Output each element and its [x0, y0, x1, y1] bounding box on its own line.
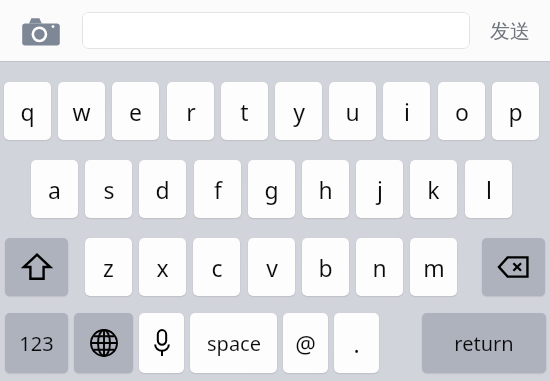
- button[interactable]: space: [190, 313, 277, 373]
- button[interactable]: k: [410, 160, 457, 218]
- staticText: c: [211, 252, 223, 283]
- button[interactable]: q: [4, 82, 51, 140]
- staticText: l: [486, 174, 492, 205]
- staticText: o: [455, 96, 469, 127]
- button[interactable]: .: [334, 313, 379, 373]
- staticText: .: [353, 328, 360, 359]
- button[interactable]: l: [465, 160, 512, 218]
- staticText: y: [293, 96, 305, 127]
- button[interactable]: w: [58, 82, 105, 140]
- staticText: j: [377, 174, 383, 205]
- button[interactable]: Delete: [482, 238, 545, 296]
- button[interactable]: m: [410, 238, 457, 296]
- button[interactable]: @: [283, 313, 328, 373]
- staticText: z: [103, 252, 114, 283]
- staticText: x: [156, 252, 169, 283]
- button[interactable]: b: [302, 238, 349, 296]
- staticText: w: [72, 96, 91, 127]
- button[interactable]: n: [356, 238, 403, 296]
- button[interactable]: 发送: [478, 10, 542, 52]
- button[interactable]: z: [85, 238, 132, 296]
- button[interactable]: r: [167, 82, 214, 140]
- button[interactable]: p: [492, 82, 539, 140]
- staticText: @: [295, 328, 316, 359]
- button[interactable]: Dictate: [139, 313, 184, 373]
- staticText: k: [427, 174, 440, 205]
- button[interactable]: x: [139, 238, 186, 296]
- staticText: 发送: [490, 19, 530, 44]
- button[interactable]: i: [383, 82, 430, 140]
- staticText: m: [423, 252, 445, 283]
- button[interactable]: f: [194, 160, 241, 218]
- staticText: 123: [19, 330, 54, 357]
- button[interactable]: c: [193, 238, 240, 296]
- button[interactable]: o: [438, 82, 485, 140]
- staticText: h: [318, 174, 333, 205]
- button[interactable]: j: [356, 160, 403, 218]
- staticText: n: [372, 252, 387, 283]
- staticText: t: [240, 96, 249, 127]
- button[interactable]: Message input: [82, 12, 470, 49]
- staticText: s: [103, 174, 115, 205]
- button[interactable]: Numbers: [5, 313, 68, 373]
- staticText: f: [214, 174, 222, 205]
- button[interactable]: h: [302, 160, 349, 218]
- staticText: v: [266, 252, 278, 283]
- staticText: i: [404, 96, 410, 127]
- button[interactable]: return: [422, 313, 546, 373]
- staticText: d: [155, 174, 170, 205]
- button[interactable]: t: [221, 82, 268, 140]
- button[interactable]: Change keyboard: [74, 313, 133, 373]
- button[interactable]: v: [248, 238, 295, 296]
- button[interactable]: Shift: [5, 238, 68, 296]
- staticText: e: [129, 96, 142, 127]
- staticText: return: [454, 330, 514, 357]
- button[interactable]: g: [248, 160, 295, 218]
- staticText: u: [345, 96, 360, 127]
- button[interactable]: e: [112, 82, 159, 140]
- staticText: q: [20, 96, 35, 127]
- staticText: r: [186, 96, 196, 127]
- staticText: space: [207, 330, 261, 357]
- button[interactable]: Camera: [18, 14, 64, 50]
- button[interactable]: d: [139, 160, 186, 218]
- staticText: g: [264, 174, 279, 205]
- button[interactable]: y: [275, 82, 322, 140]
- staticText: b: [318, 252, 333, 283]
- button[interactable]: a: [31, 160, 78, 218]
- button[interactable]: s: [85, 160, 132, 218]
- staticText: p: [508, 96, 523, 127]
- button[interactable]: u: [329, 82, 376, 140]
- staticText: a: [48, 174, 61, 205]
